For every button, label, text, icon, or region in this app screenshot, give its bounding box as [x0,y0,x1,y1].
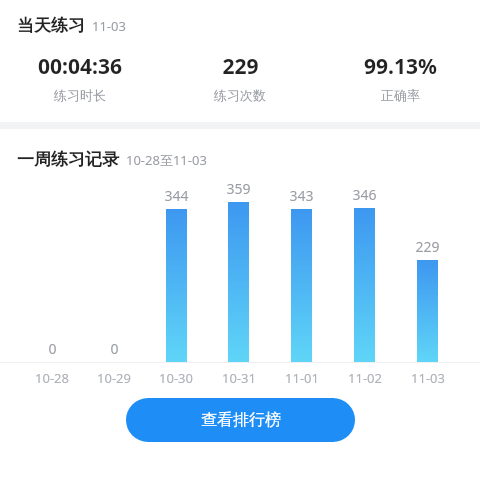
staticText: 0 [110,339,119,358]
button[interactable]: 00:04:36 [0,52,160,103]
staticText: 一周练习记录 [17,149,119,170]
staticText: 00:04:36 [38,52,122,81]
staticText: 229 [222,52,259,81]
staticText: 练习时长 [54,87,106,103]
staticText: 0 [48,339,57,358]
staticText: 359 [226,179,251,198]
button[interactable]: 229 [160,52,320,103]
staticText: 11-01 [285,369,319,387]
staticText: 10-28至11-03 [126,151,207,169]
staticText: 10-29 [97,369,131,387]
staticText: 10-28 [35,369,69,387]
button[interactable]: 查看排行榜 [126,398,355,442]
staticText: 11-02 [348,369,382,387]
staticText: 344 [164,186,189,205]
staticText: 练习次数 [214,87,266,103]
staticText: 11-03 [411,369,445,387]
staticText: 正确率 [381,87,420,103]
staticText: 229 [415,237,440,256]
staticText: 343 [289,186,314,205]
staticText: 99.13% [364,52,437,81]
button[interactable]: 99.13% [320,52,480,103]
staticText: 10-30 [159,369,193,387]
staticText: 10-31 [222,369,256,387]
staticText: 当天练习 [17,15,85,36]
staticText: 查看排行榜 [201,410,281,430]
staticText: 11-03 [92,17,126,35]
staticText: 346 [352,185,377,204]
